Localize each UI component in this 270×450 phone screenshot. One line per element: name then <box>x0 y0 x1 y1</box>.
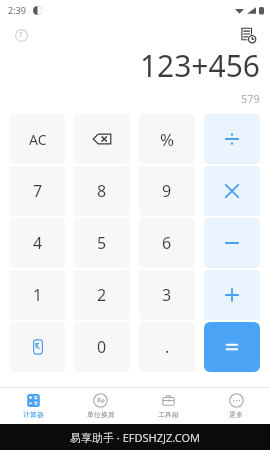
button[interactable]: Divide <box>204 114 260 164</box>
staticText: 579 <box>241 91 260 106</box>
button[interactable]: Minus <box>204 218 260 268</box>
button[interactable]: 单位换算 <box>67 388 134 424</box>
button[interactable]: Equals <box>204 322 260 372</box>
staticText: 7 <box>33 180 43 202</box>
staticText: AC <box>29 130 47 149</box>
staticText: 123+456 <box>139 45 260 86</box>
button[interactable]: 1 <box>10 270 65 320</box>
staticText: 1 <box>33 284 43 306</box>
staticText: ? <box>19 30 23 40</box>
button[interactable]: 4 <box>10 218 65 268</box>
button[interactable]: 5 <box>74 218 130 268</box>
button[interactable]: Plus <box>204 270 260 320</box>
button[interactable]: . <box>139 322 195 372</box>
staticText: 计算器 <box>23 410 44 419</box>
button[interactable]: Help <box>10 24 32 46</box>
staticText: 6 <box>162 232 172 254</box>
staticText: % <box>160 128 175 151</box>
staticText: 单位换算 <box>87 410 115 419</box>
button[interactable]: 8 <box>74 166 130 216</box>
staticText: 更多 <box>229 410 243 419</box>
button[interactable]: Delete <box>74 114 130 164</box>
staticText: 2:39 <box>8 4 26 16</box>
staticText: . <box>165 336 170 358</box>
button[interactable]: 6 <box>139 218 195 268</box>
staticText: 易享助手 · EFDSHZJZ.COM <box>70 430 200 445</box>
button[interactable]: % <box>139 114 195 164</box>
staticText: 5 <box>97 232 107 254</box>
staticText: 4 <box>33 232 43 254</box>
button[interactable]: History <box>236 23 260 47</box>
button[interactable]: 工具箱 <box>134 388 202 424</box>
button[interactable]: 0 <box>74 322 130 372</box>
staticText: 8 <box>97 180 107 202</box>
button[interactable]: Expand <box>10 322 65 372</box>
button[interactable]: Multiply <box>204 166 260 216</box>
staticText: 9 <box>162 180 172 202</box>
button[interactable]: 3 <box>139 270 195 320</box>
button[interactable]: 7 <box>10 166 65 216</box>
button[interactable]: 9 <box>139 166 195 216</box>
button[interactable]: 计算器 <box>0 388 67 424</box>
staticText: 0 <box>97 336 107 358</box>
button[interactable]: AC <box>10 114 65 164</box>
staticText: 3 <box>162 284 172 306</box>
button[interactable]: 更多 <box>202 388 270 424</box>
button[interactable]: 2 <box>74 270 130 320</box>
staticText: 2 <box>97 284 107 306</box>
staticText: 工具箱 <box>158 410 179 419</box>
